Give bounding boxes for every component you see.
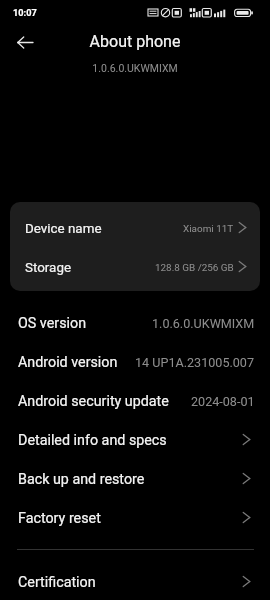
staticText: Certification	[18, 574, 96, 591]
staticText: 2024-08-01	[191, 394, 255, 409]
staticText: Android version	[18, 354, 118, 371]
button[interactable]: Storage	[10, 248, 260, 287]
staticText: Back up and restore	[18, 471, 145, 488]
staticText: 1.0.6.0.UKWMIXM	[152, 316, 255, 331]
staticText: About phone	[0, 32, 270, 51]
button[interactable]: Certification	[0, 563, 270, 600]
button[interactable]: Factory reset	[0, 499, 270, 538]
staticText: 128.8 GB /256 GB	[155, 262, 234, 274]
staticText: 1.0.6.0.UKWMIXM	[0, 62, 270, 74]
staticText: Detailed info and specs	[18, 432, 167, 449]
staticText: 10:07	[13, 7, 37, 18]
staticText: Device name	[25, 221, 102, 237]
staticText: Xiaomi 11T	[183, 223, 234, 235]
button[interactable]: Back up and restore	[0, 460, 270, 499]
button[interactable]: Device name	[10, 209, 260, 248]
staticText: OS version	[18, 315, 87, 332]
button[interactable]: Detailed info and specs	[0, 421, 270, 460]
staticText: Factory reset	[18, 510, 101, 527]
button[interactable]: Back	[9, 26, 41, 58]
staticText: Android security update	[18, 393, 169, 410]
staticText: Storage	[25, 260, 72, 276]
staticText: 14 UP1A.231005.007	[135, 355, 255, 370]
